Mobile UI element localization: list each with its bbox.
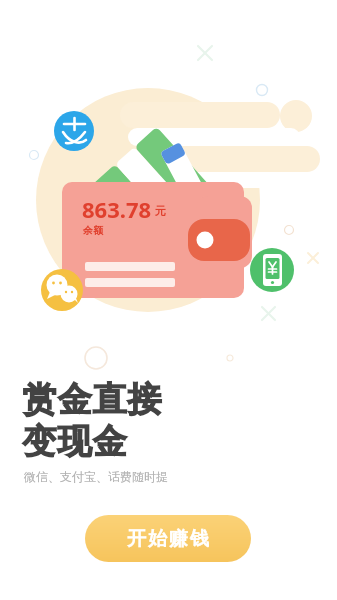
staticText: 元 bbox=[155, 204, 166, 218]
staticText: 开始赚钱 bbox=[126, 527, 210, 551]
button[interactable]: WeChat bbox=[41, 269, 83, 311]
staticText: 微信、支付宝、话费随时提 bbox=[24, 469, 168, 484]
staticText: 863.78 bbox=[82, 194, 152, 224]
button[interactable]: Alipay bbox=[54, 111, 94, 151]
staticText: 赏金直接 bbox=[22, 378, 162, 421]
staticText: 余额 bbox=[83, 224, 103, 237]
button[interactable]: 开始赚钱 bbox=[85, 515, 251, 562]
staticText: 变现金 bbox=[22, 420, 127, 463]
button[interactable]: Mobile top-up bbox=[250, 248, 294, 292]
